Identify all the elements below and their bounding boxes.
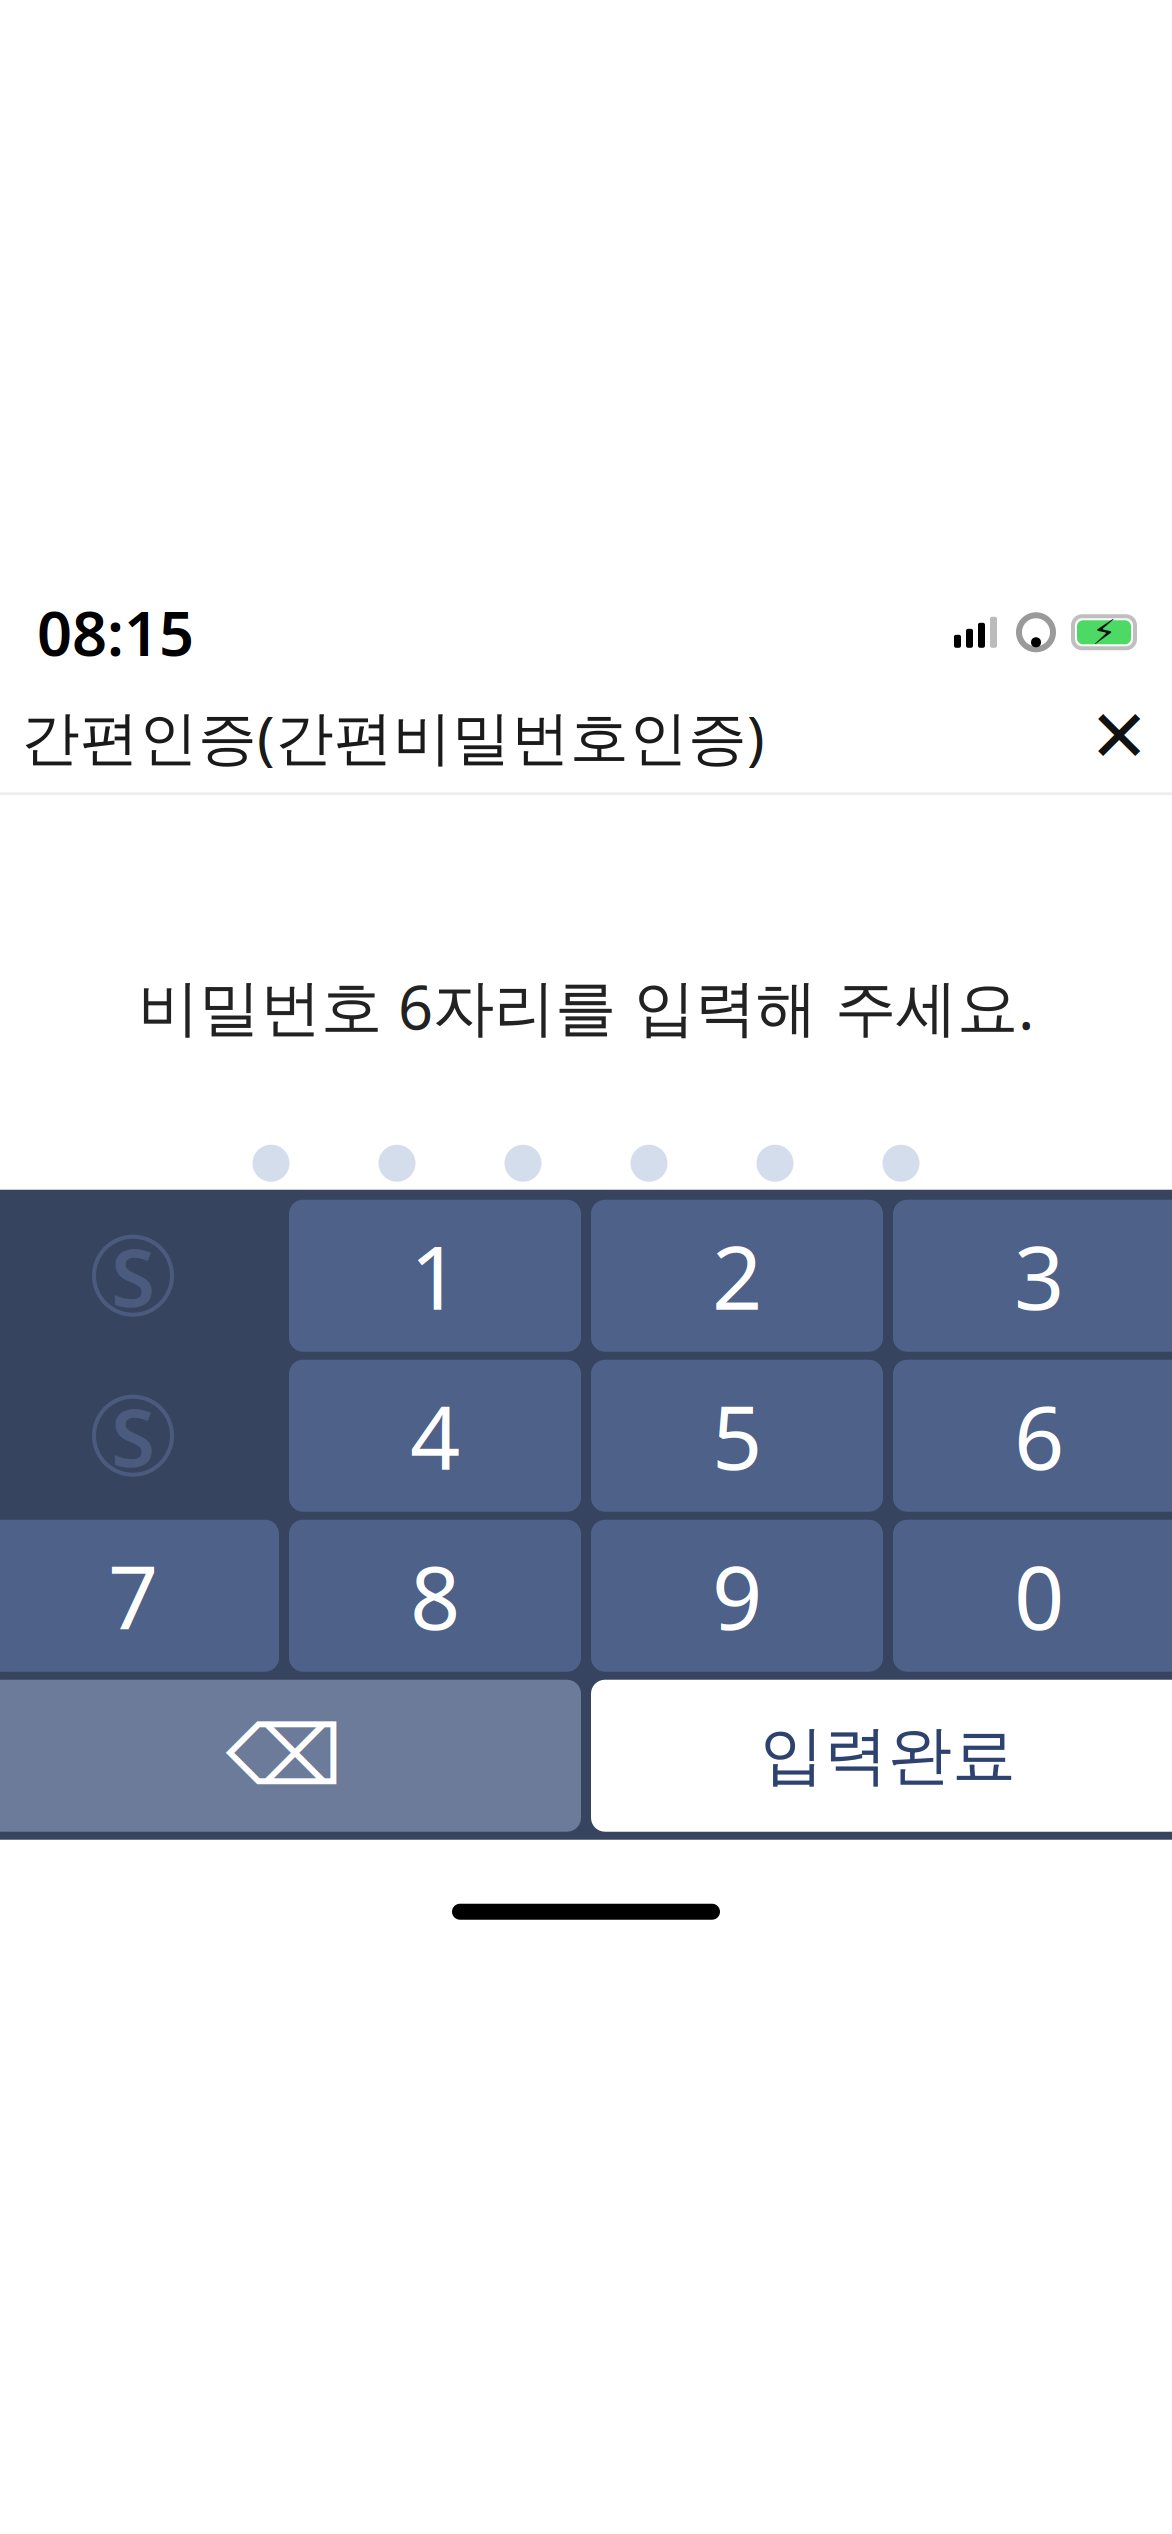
button[interactable]: 0 — [893, 1520, 1172, 1672]
staticText: 7 — [108, 1537, 158, 1654]
button[interactable]: 지우기 — [0, 1680, 581, 1832]
staticText: 0 — [1014, 1537, 1064, 1654]
staticText: 3 — [1014, 1217, 1064, 1334]
staticText: 간편인증(간편비밀번호인증) — [21, 697, 765, 775]
staticText: 6 — [1014, 1377, 1064, 1494]
staticText: 비밀번호 6자리를 입력해 주세요. — [138, 965, 1034, 1047]
button[interactable]: 닫기 — [1071, 688, 1167, 784]
staticText: 5 — [712, 1377, 762, 1494]
button[interactable]: 4 — [289, 1360, 581, 1512]
button[interactable]: 7 — [0, 1520, 279, 1672]
button[interactable]: 6 — [893, 1360, 1172, 1512]
staticText: S — [111, 1223, 155, 1329]
staticText: 08:15 — [37, 592, 194, 673]
staticText: 9 — [712, 1537, 762, 1654]
staticText: ✕ — [1089, 695, 1149, 777]
staticText: ⚡︎ — [1092, 613, 1116, 652]
button[interactable]: 입력완료 — [591, 1680, 1172, 1832]
staticText: ⌫ — [225, 1709, 342, 1803]
button[interactable]: 1 — [289, 1200, 581, 1352]
staticText: 1 — [410, 1217, 460, 1334]
button[interactable]: 5 — [591, 1360, 883, 1512]
staticText: 4 — [410, 1377, 460, 1494]
button[interactable]: 2 — [591, 1200, 883, 1352]
staticText: 8 — [410, 1537, 460, 1654]
button[interactable]: 8 — [289, 1520, 581, 1672]
button[interactable]: 9 — [591, 1520, 883, 1672]
staticText: 2 — [712, 1217, 762, 1334]
button[interactable]: 3 — [893, 1200, 1172, 1352]
staticText: 입력완료 — [760, 1716, 1016, 1795]
staticText: S — [111, 1383, 155, 1489]
